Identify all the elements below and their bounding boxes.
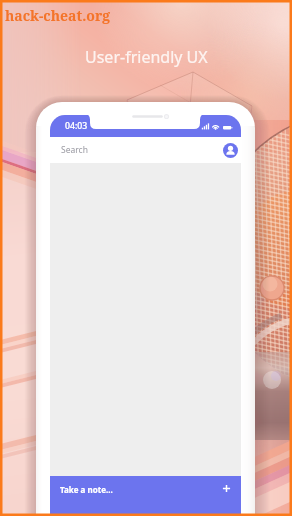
staticText: Take a note...: [60, 484, 113, 495]
staticText: Search: [61, 144, 88, 156]
staticText: hack-cheat.org: [5, 6, 111, 25]
staticText: User-friendly UX: [85, 46, 208, 68]
button[interactable]: Account: [223, 143, 238, 158]
staticText: 04:03: [65, 120, 88, 132]
button[interactable]: Take a note...: [50, 476, 241, 516]
